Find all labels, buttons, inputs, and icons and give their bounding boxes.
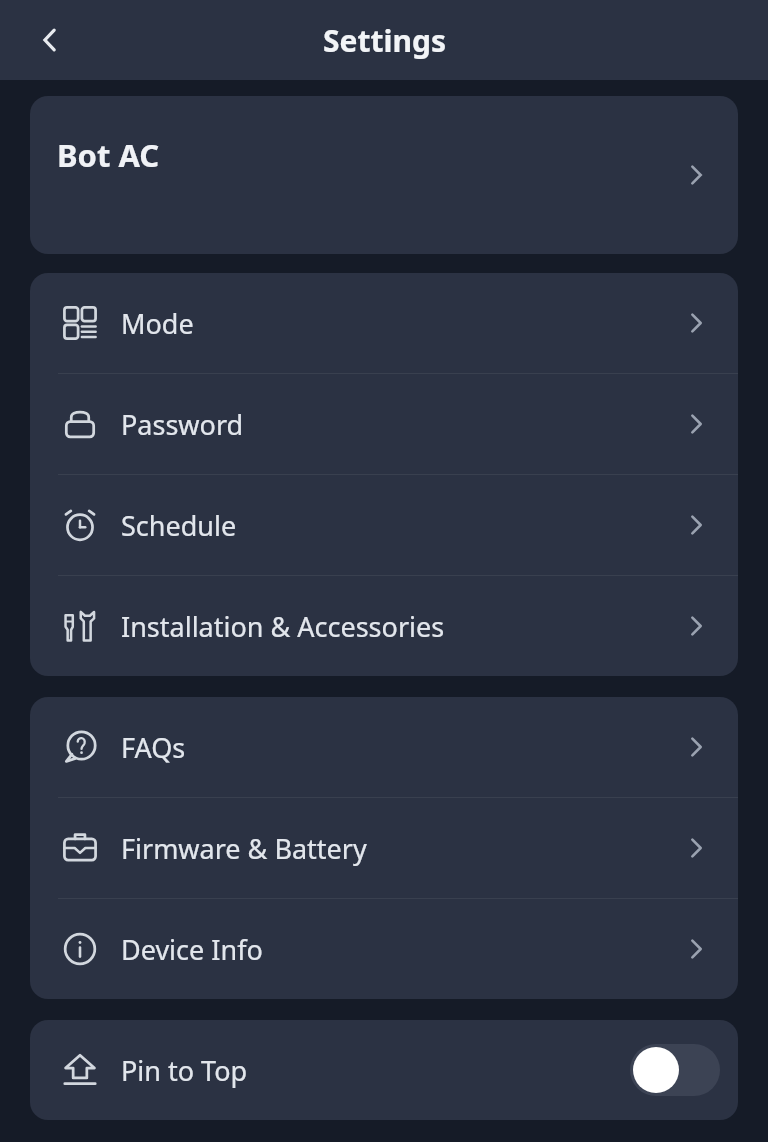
- button[interactable]: Firmware & Battery: [30, 798, 738, 898]
- staticText: Device Info: [121, 931, 676, 968]
- staticText: Installation & Accessories: [121, 608, 676, 645]
- button[interactable]: Installation & Accessories: [30, 576, 738, 676]
- staticText: Firmware & Battery: [121, 830, 676, 867]
- button[interactable]: Device Info: [30, 899, 738, 999]
- button[interactable]: Pin to Top toggle: [630, 1044, 720, 1096]
- staticText: FAQs: [121, 729, 676, 766]
- button[interactable]: Back: [22, 12, 78, 68]
- button[interactable]: Bot AC: [30, 96, 738, 254]
- button[interactable]: Password: [30, 374, 738, 474]
- staticText: Pin to Top: [121, 1052, 630, 1089]
- button[interactable]: Schedule: [30, 475, 738, 575]
- staticText: Password: [121, 406, 676, 443]
- button[interactable]: Pin to Top: [30, 1020, 738, 1120]
- staticText: Bot AC: [57, 134, 160, 176]
- button[interactable]: FAQs: [30, 697, 738, 797]
- button[interactable]: Mode: [30, 273, 738, 373]
- staticText: Mode: [121, 305, 676, 342]
- staticText: Settings: [323, 20, 446, 61]
- staticText: Schedule: [121, 507, 676, 544]
